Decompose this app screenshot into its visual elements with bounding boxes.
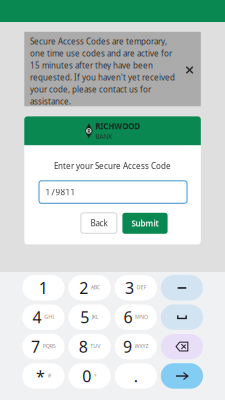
button[interactable]: Close	[180, 60, 200, 80]
button[interactable]: 3	[115, 275, 157, 300]
staticText: +	[94, 372, 97, 379]
staticText: BANK	[95, 132, 112, 141]
staticText: ABC	[91, 284, 100, 291]
staticText: 179811	[45, 187, 75, 197]
button[interactable]: .	[115, 363, 157, 389]
staticText: Back	[90, 218, 107, 228]
staticText: Secure Access Codes are temporary, one t…	[30, 36, 175, 107]
button[interactable]: Go	[161, 363, 203, 389]
button[interactable]: 9	[115, 334, 157, 359]
staticText: GHI	[44, 313, 54, 320]
staticText: PQRS	[43, 342, 56, 350]
staticText: Submit	[131, 218, 158, 229]
button[interactable]: Back	[81, 213, 117, 233]
staticText: 3	[125, 277, 134, 298]
button[interactable]: 6	[115, 304, 157, 330]
staticText: 9	[123, 336, 132, 357]
staticText: .	[134, 365, 138, 386]
staticText: RICHWOOD	[95, 121, 140, 131]
staticText: JKL	[92, 313, 99, 320]
staticText: *	[36, 365, 45, 386]
button[interactable]: Space	[161, 304, 203, 330]
button[interactable]: 4	[22, 304, 64, 330]
button[interactable]: 7	[22, 334, 64, 359]
staticText: WXYZ	[134, 342, 148, 350]
button[interactable]: 5	[68, 304, 111, 330]
staticText: TUV	[90, 342, 100, 350]
button[interactable]: Dash	[161, 275, 203, 300]
button[interactable]: 0	[68, 363, 111, 389]
staticText: DEF	[136, 284, 146, 291]
button[interactable]: Submit	[122, 213, 168, 234]
staticText: 5	[80, 306, 89, 328]
button[interactable]: *	[22, 363, 64, 389]
staticText: #	[48, 372, 51, 379]
staticText: 4	[32, 306, 41, 328]
staticText: 2	[79, 277, 88, 298]
staticText: 0	[82, 365, 91, 386]
button[interactable]: 2	[68, 275, 111, 300]
button[interactable]: Delete	[161, 334, 203, 359]
button[interactable]: 1	[22, 275, 64, 300]
staticText: 7	[31, 336, 40, 357]
staticText: 6	[123, 306, 132, 328]
staticText: 8	[79, 336, 88, 357]
staticText: Enter your Secure Access Code	[54, 161, 171, 171]
staticText: R	[87, 127, 90, 134]
staticText: 1	[39, 277, 48, 298]
staticText: MNO	[135, 313, 148, 320]
button[interactable]: 8	[68, 334, 111, 359]
